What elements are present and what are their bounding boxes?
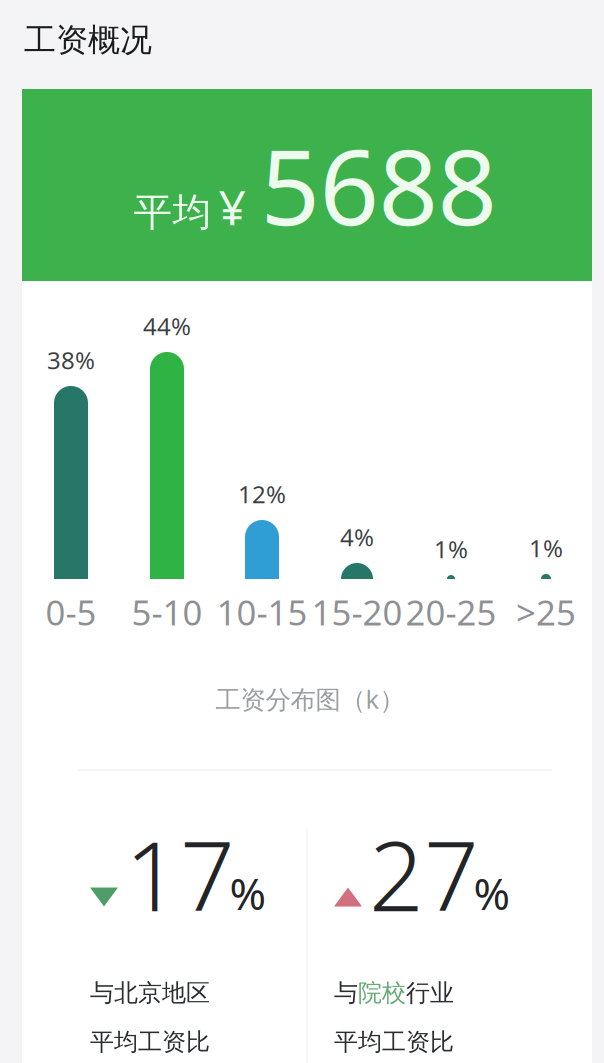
staticText: >25 [516,589,576,635]
staticText: 44% [143,310,191,342]
staticText: ¥ [218,175,245,239]
staticText: 12% [238,478,286,510]
staticText: 平均 [133,189,211,236]
staticText: 17 [125,810,235,938]
staticText: 15-20 [311,589,402,635]
staticText: 4% [340,521,374,553]
button[interactable]: 27 [0,0,604,1063]
staticText: 平均工资比 [334,1027,454,1057]
staticText: 38% [47,344,95,376]
staticText: % [473,864,510,922]
staticText: 行业 [406,978,454,1008]
staticText: 27 [369,810,479,938]
staticText: 5-10 [131,589,202,635]
staticText: % [229,864,266,922]
staticText: 1% [434,533,468,565]
staticText: 院校 [358,978,406,1008]
staticText: 平均工资比 [90,1027,210,1057]
staticText: 5688 [260,116,496,254]
staticText: 与 [90,978,114,1008]
staticText: 1% [529,532,563,564]
staticText: 工资分布图（k） [215,682,404,716]
staticText: 0-5 [45,589,96,635]
staticText: 与 [334,978,358,1008]
staticText: 20-25 [405,589,496,635]
staticText: 工资概况 [24,20,152,60]
staticText: 北京地区 [114,978,210,1008]
staticText: 10-15 [216,589,307,635]
button[interactable]: 17 [0,0,604,1063]
